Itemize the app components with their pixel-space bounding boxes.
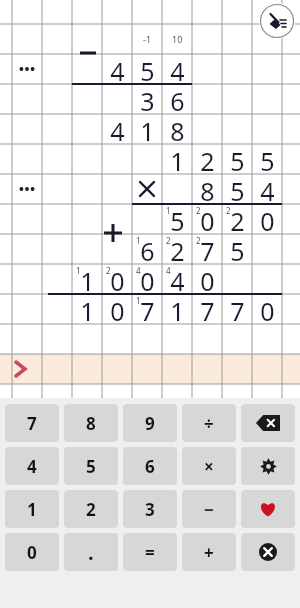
staticText: 4 [166,265,171,275]
staticText: 0 [110,294,125,324]
button[interactable]: 4 [5,447,59,485]
staticText: 1 [80,264,95,294]
button[interactable]: del [241,404,295,442]
button[interactable]: + [182,533,236,571]
staticText: 1 [136,295,141,305]
button[interactable]: . [64,533,118,571]
staticText: 5 [230,174,245,204]
staticText: = [145,541,155,564]
staticText: 2 [106,265,111,275]
staticText: 1 [76,265,81,275]
button[interactable]: 5 [64,447,118,485]
staticText: 9 [145,412,155,435]
staticText: 0 [260,294,275,324]
staticText: 3 [145,498,155,521]
button[interactable]: 7 [5,404,59,442]
staticText: 0 [260,204,275,234]
staticText: 8 [200,174,215,204]
staticText: − [204,498,214,521]
staticText: 2 [86,498,96,521]
staticText: 0 [27,541,37,564]
staticText: 2 [200,144,215,174]
button[interactable]: 6 [123,447,177,485]
staticText: 5 [86,455,96,478]
staticText: 1 [140,114,155,144]
staticText: 6 [140,234,155,264]
staticText: 5 [230,144,245,174]
button[interactable]: More options [12,54,42,84]
button[interactable]: 1 [5,490,59,528]
staticText: 3 [140,84,155,114]
button[interactable]: More options [12,174,42,204]
button[interactable]: gear [241,447,295,485]
staticText: 7 [27,412,37,435]
staticText: 5 [260,144,275,174]
staticText: 1 [136,235,141,245]
staticText: 2 [226,205,231,215]
staticText: 2 [230,204,245,234]
button[interactable]: 2 [64,490,118,528]
staticText: 5 [170,204,185,234]
staticText: 7 [140,294,155,324]
button[interactable]: clr [241,533,295,571]
staticText: 7 [200,234,215,264]
staticText: 0 [200,264,215,294]
staticText: 4 [136,265,141,275]
button[interactable]: 0 [5,533,59,571]
staticText: 1 [80,294,95,324]
staticText: 1 [166,205,171,215]
staticText: 5 [140,54,155,84]
button[interactable]: 9 [123,404,177,442]
staticText: × [204,455,214,478]
button[interactable]: − [182,490,236,528]
staticText: + [204,541,214,564]
staticText: 4 [170,54,185,84]
staticText: 8 [86,412,96,435]
staticText: 2 [170,234,185,264]
staticText: 2 [166,235,171,245]
button[interactable]: = [123,533,177,571]
staticText: 7 [230,294,245,324]
button[interactable]: 3 [123,490,177,528]
staticText: 6 [145,455,155,478]
staticText: 4 [260,174,275,204]
button[interactable]: × [182,447,236,485]
staticText: 1 [170,144,185,174]
button[interactable]: 8 [64,404,118,442]
staticText: 2 [196,235,201,245]
button[interactable]: ÷ [182,404,236,442]
button[interactable]: Clear all [259,3,295,39]
staticText: 2 [196,205,201,215]
staticText: ÷ [204,412,214,435]
staticText: 0 [110,264,125,294]
staticText: 10 [172,33,183,45]
staticText: 1 [170,294,185,324]
staticText: . [88,539,94,566]
staticText: 4 [27,455,37,478]
staticText: 5 [230,234,245,264]
staticText: 0 [200,204,215,234]
staticText: 6 [170,84,185,114]
staticText: 1 [27,498,37,521]
staticText: 4 [170,264,185,294]
staticText: 8 [170,114,185,144]
staticText: 0 [140,264,155,294]
staticText: 7 [200,294,215,324]
staticText: 4 [110,54,125,84]
staticText: 4 [110,114,125,144]
staticText: -1 [143,33,152,45]
button[interactable]: heart [241,490,295,528]
